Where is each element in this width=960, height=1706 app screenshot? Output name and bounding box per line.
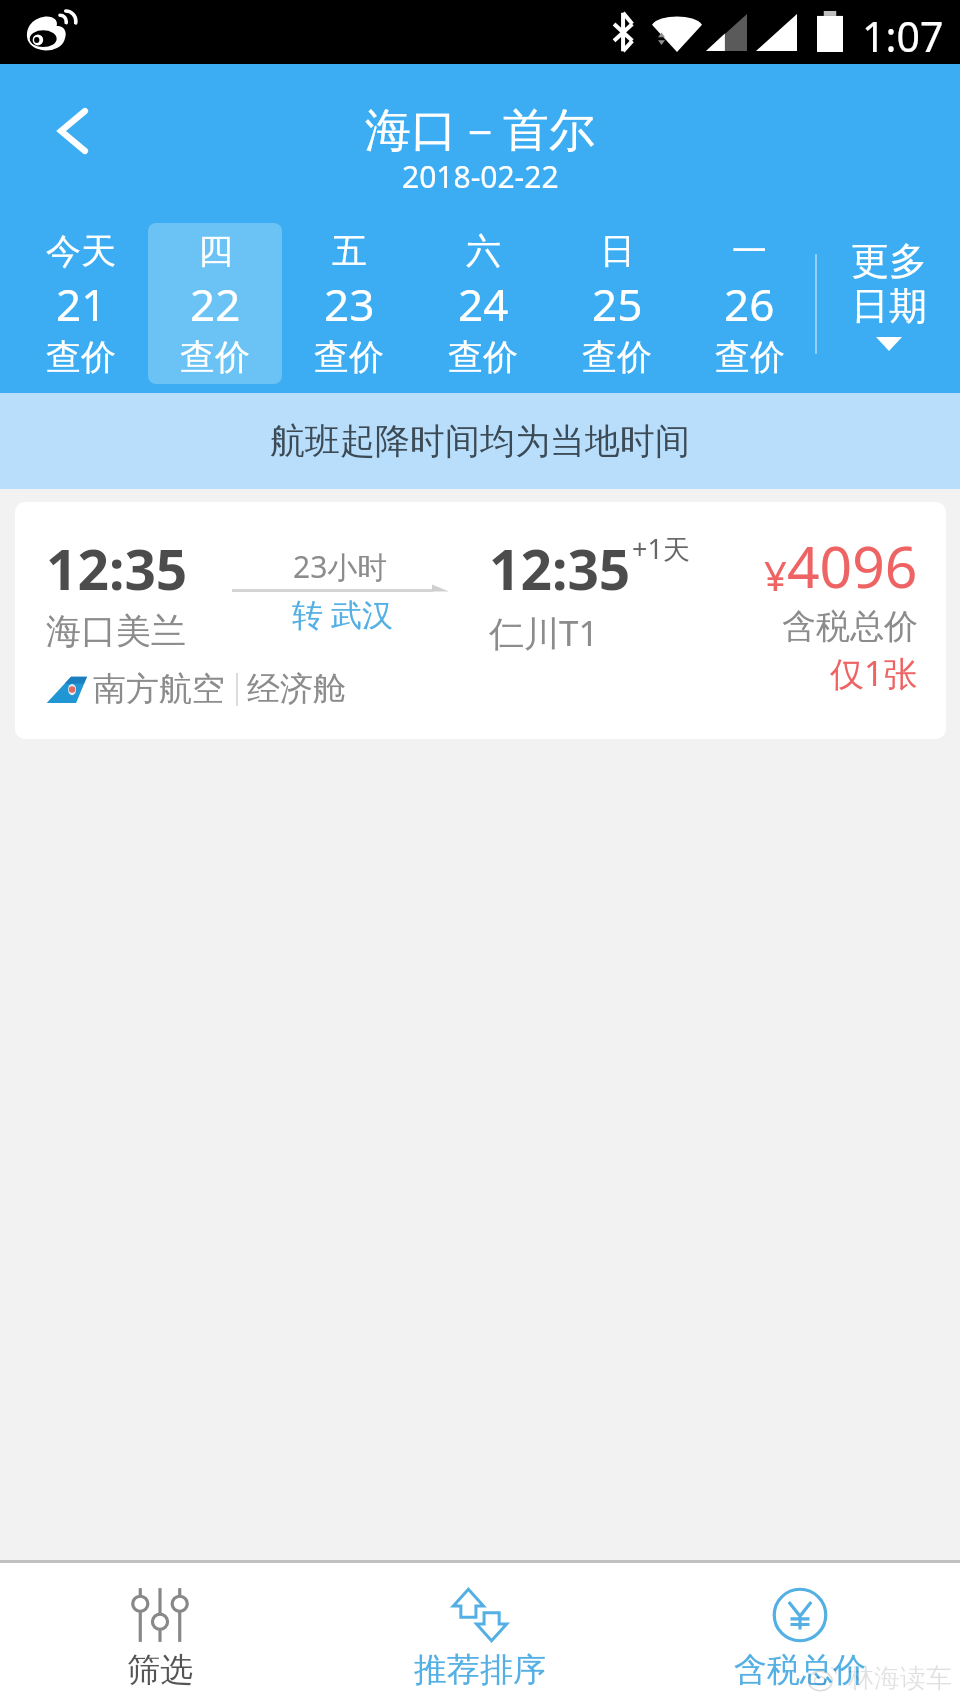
button[interactable]: Back [19,77,127,189]
staticText: 经济舱 [247,668,346,710]
staticText: 转 武汉 [292,593,394,635]
button[interactable]: 日 [550,223,684,384]
button[interactable]: 筛选 [0,1563,320,1706]
staticText: 22 [190,274,241,334]
button[interactable]: 更多 日期 [817,221,960,386]
staticText: 查价 [46,335,116,379]
button[interactable]: 12:35 [15,502,946,739]
staticText: 航班起降时间均为当地时间 [270,419,690,463]
button[interactable]: 一 [684,223,815,384]
staticText: 海口美兰 [46,609,186,653]
staticText: 4096 [787,527,918,605]
staticText: 日 [600,229,635,273]
staticText: 26 [724,274,775,334]
staticText: 24 [458,274,509,334]
staticText: 四 [198,229,233,273]
button[interactable]: 含税总价 [640,1563,960,1706]
staticText: 林海读车 [848,1662,952,1695]
staticText: 海口－首尔 [365,102,595,160]
staticText: 仅1张 [830,650,918,696]
staticText: 1:07 [862,8,944,64]
button[interactable]: 四 [148,223,282,384]
button[interactable]: 六 [416,223,550,384]
button[interactable]: 推荐排序 [320,1563,640,1706]
staticText: 今天 [46,229,116,273]
staticText: 含税总价 [782,605,918,648]
staticText: 查价 [448,335,518,379]
staticText: 12:35 [46,531,188,606]
staticText: 2018-02-22 [402,156,559,197]
staticText: 一 [732,229,767,273]
staticText: 筛选 [127,1649,193,1691]
staticText: 仁川T1 [489,609,599,657]
staticText: ¥ [764,548,787,602]
staticText: 25 [592,274,643,334]
staticText: 六 [466,229,501,273]
staticText: 更多 日期 [851,237,927,330]
staticText: 查价 [314,335,384,379]
button[interactable]: 今天 [14,223,148,384]
staticText: 21 [56,274,107,334]
staticText: 23 [324,274,375,334]
staticText: 查价 [582,335,652,379]
staticText: 南方航空 [93,668,225,710]
staticText: 12:35 [489,531,631,606]
button[interactable]: 五 [282,223,416,384]
staticText: 查价 [180,335,250,379]
staticText: 含税总价 [734,1649,866,1691]
staticText: 查价 [715,335,785,379]
staticText: 五 [332,229,367,273]
staticText: 推荐排序 [414,1649,546,1691]
staticText: +1天 [632,530,690,567]
staticText: 23小时 [293,546,388,587]
